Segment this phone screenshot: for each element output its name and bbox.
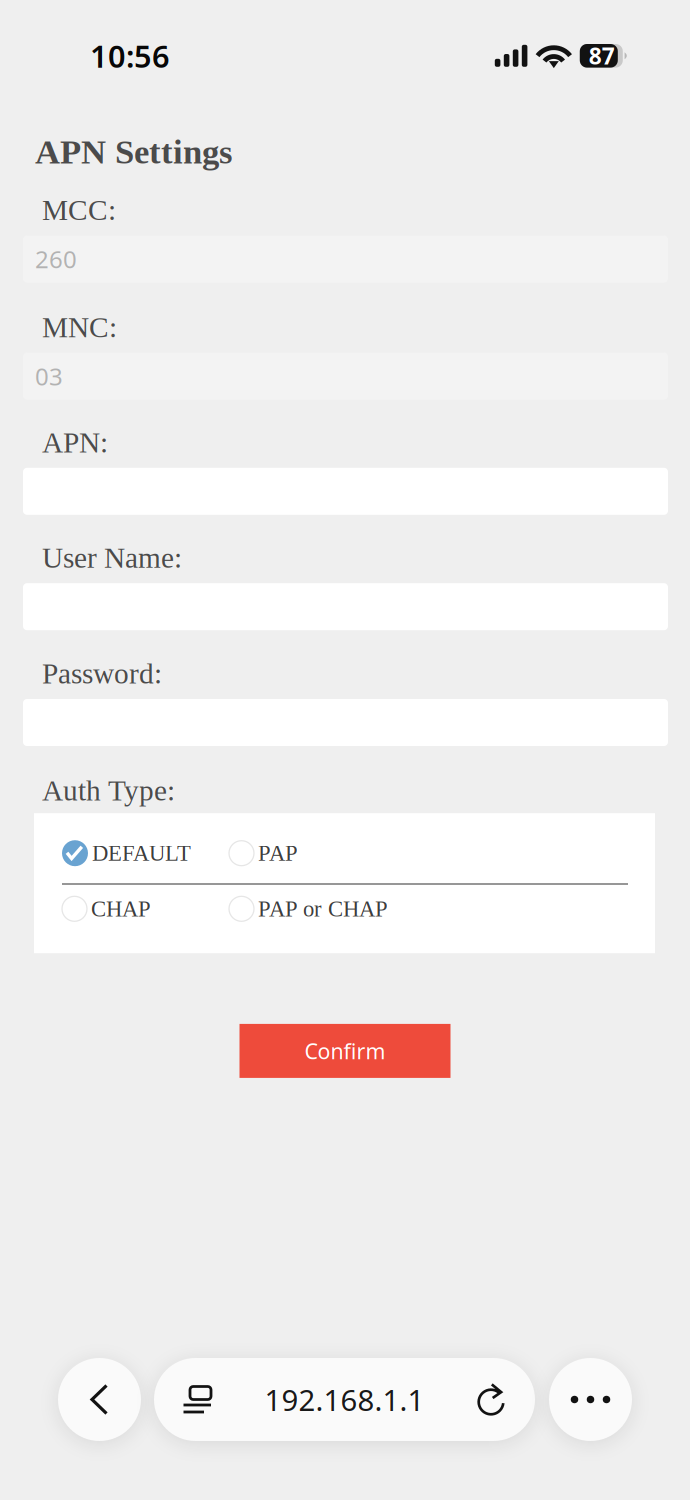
button[interactable]: Back bbox=[58, 1358, 141, 1441]
staticText: 192.168.1.1 bbox=[264, 1380, 424, 1419]
staticText: User Name: bbox=[42, 542, 182, 574]
staticText: 10:56 bbox=[90, 35, 170, 76]
staticText: 03 bbox=[35, 360, 63, 392]
staticText: 260 bbox=[35, 243, 77, 275]
button[interactable]: PAP bbox=[229, 838, 429, 868]
button[interactable]: Reload bbox=[465, 1358, 517, 1441]
button[interactable]: DEFAULT bbox=[62, 838, 229, 868]
button[interactable]: Page settings bbox=[172, 1358, 224, 1441]
staticText: APN: bbox=[42, 426, 108, 459]
staticText: Password: bbox=[42, 657, 162, 690]
button[interactable]: More bbox=[549, 1358, 632, 1441]
staticText: CHAP bbox=[91, 896, 151, 921]
button[interactable]: PAP or CHAP bbox=[229, 894, 429, 924]
staticText: 87 bbox=[589, 41, 615, 71]
button[interactable]: Confirm bbox=[239, 1024, 450, 1078]
staticText: PAP or CHAP bbox=[258, 896, 388, 921]
button[interactable]: CHAP bbox=[62, 894, 229, 924]
staticText: DEFAULT bbox=[92, 841, 191, 866]
staticText: MCC: bbox=[42, 194, 116, 226]
staticText: Confirm bbox=[304, 1037, 385, 1065]
staticText: APN Settings bbox=[35, 133, 232, 171]
staticText: PAP bbox=[258, 841, 298, 866]
staticText: MNC: bbox=[42, 311, 117, 344]
staticText: Auth Type: bbox=[42, 774, 175, 807]
